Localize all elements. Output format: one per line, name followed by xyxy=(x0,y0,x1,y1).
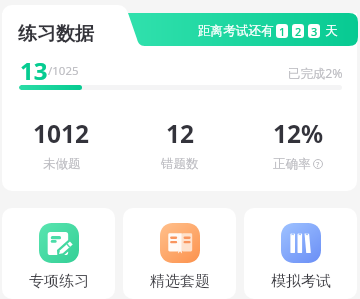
staticText: 13 xyxy=(20,54,48,80)
button[interactable]: 精选套题 xyxy=(123,208,236,299)
staticText: 已完成2% xyxy=(288,65,343,82)
button[interactable]: 模拟考试 xyxy=(244,208,357,299)
staticText: 未做题 xyxy=(43,156,81,172)
staticText: 3 xyxy=(311,24,318,38)
staticText: /1025 xyxy=(48,63,79,79)
staticText: 1 xyxy=(279,24,286,38)
staticText: 正确率 xyxy=(273,156,311,172)
button[interactable]: Accuracy info xyxy=(313,159,323,169)
staticText: 12% xyxy=(273,117,324,150)
staticText: 天 xyxy=(325,23,338,39)
staticText: 练习数据 xyxy=(18,22,94,46)
staticText: 错题数 xyxy=(161,156,199,172)
staticText: 精选套题 xyxy=(150,272,210,291)
staticText: 2 xyxy=(295,24,302,38)
staticText: 12 xyxy=(166,117,195,150)
button[interactable]: 专项练习 xyxy=(2,208,115,299)
staticText: ? xyxy=(316,159,320,169)
staticText: 专项练习 xyxy=(29,272,89,291)
staticText: 1012 xyxy=(33,117,90,150)
staticText: 距离考试还有 xyxy=(198,23,274,39)
staticText: 模拟考试 xyxy=(271,272,331,291)
